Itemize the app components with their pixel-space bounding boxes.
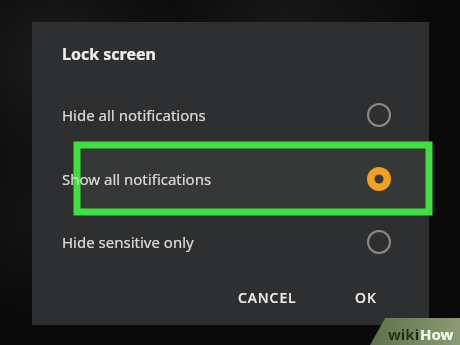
staticText: How xyxy=(420,324,454,344)
staticText: wiki xyxy=(388,324,420,344)
staticText: Lock screen xyxy=(62,43,156,65)
button[interactable]: Hide sensitive only xyxy=(32,213,429,271)
staticText: Hide all notifications xyxy=(62,105,206,125)
other: Hide sensitive only xyxy=(361,224,397,260)
button[interactable]: Hide all notifications xyxy=(32,86,429,144)
button[interactable]: Show all notifications xyxy=(32,144,429,213)
staticText: Hide sensitive only xyxy=(62,232,194,252)
staticText: OK xyxy=(355,288,377,307)
staticText: CANCEL xyxy=(238,288,297,307)
button[interactable]: CANCEL xyxy=(228,280,307,315)
button[interactable]: OK xyxy=(345,280,387,315)
other: Show all notifications xyxy=(361,161,397,197)
other: Hide all notifications xyxy=(361,97,397,133)
staticText: Show all notifications xyxy=(62,169,212,189)
